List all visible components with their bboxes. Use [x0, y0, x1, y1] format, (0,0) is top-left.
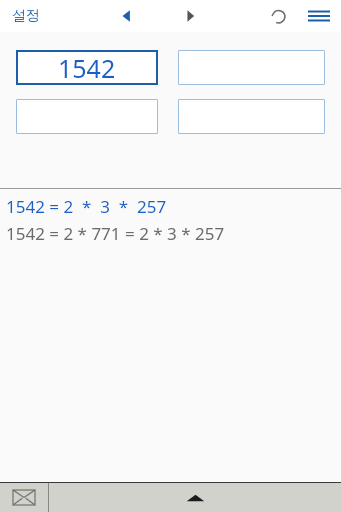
- button[interactable]: Next: [175, 1, 205, 31]
- button[interactable]: Messages: [0, 483, 48, 512]
- button[interactable]: Previous: [112, 1, 142, 31]
- button[interactable]: [16, 99, 158, 134]
- button[interactable]: 1542: [16, 50, 158, 85]
- button[interactable]: [178, 99, 325, 134]
- staticText: 설정: [12, 7, 40, 25]
- staticText: 1542: [58, 51, 116, 85]
- button[interactable]: [178, 50, 325, 85]
- button[interactable]: 설정: [6, 4, 46, 28]
- staticText: 1542 = 2 * 3 * 257: [6, 195, 167, 218]
- button[interactable]: Undo: [264, 1, 294, 31]
- button[interactable]: Menu: [303, 0, 335, 32]
- button[interactable]: Show keyboard: [49, 483, 341, 512]
- staticText: 1542 = 2 * 771 = 2 * 3 * 257: [6, 222, 225, 245]
